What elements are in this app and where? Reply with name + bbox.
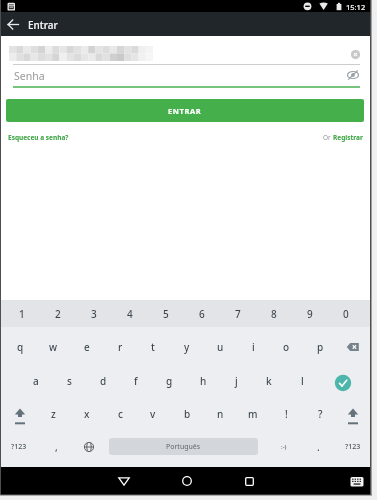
staticText: m <box>248 407 258 421</box>
button[interactable]: m <box>238 404 268 424</box>
button[interactable]: 8 <box>259 304 289 324</box>
button[interactable]: v <box>138 404 168 424</box>
staticText: ! <box>285 407 288 421</box>
button[interactable] <box>350 49 361 60</box>
button[interactable]: a <box>21 371 51 391</box>
button[interactable] <box>346 69 360 81</box>
button[interactable]: f <box>121 371 151 391</box>
button[interactable] <box>174 469 200 493</box>
staticText: 2 <box>55 307 61 321</box>
button[interactable]: y <box>172 337 202 357</box>
button[interactable]: t <box>138 337 168 357</box>
staticText: Entrar <box>28 18 58 32</box>
button[interactable]: 9 <box>295 304 325 324</box>
button[interactable]: k <box>254 371 284 391</box>
button[interactable]: j <box>221 371 251 391</box>
button[interactable]: Esqueceu a senha? <box>8 133 69 142</box>
button[interactable]: g <box>154 371 184 391</box>
staticText: j <box>235 374 238 388</box>
staticText: , <box>55 440 58 454</box>
button[interactable]: , <box>41 437 71 457</box>
button[interactable]: u <box>205 337 235 357</box>
button[interactable]: :-) <box>269 437 299 457</box>
staticText: 5 <box>163 307 169 321</box>
staticText: ?123 <box>345 442 361 452</box>
button[interactable]: . <box>303 437 333 457</box>
button[interactable]: o <box>271 337 301 357</box>
staticText: t <box>151 340 155 354</box>
button[interactable]: p <box>305 337 335 357</box>
staticText: 4 <box>127 307 133 321</box>
staticText: Registrar <box>333 133 363 142</box>
button[interactable]: ?123 <box>338 437 368 457</box>
staticText: a <box>33 374 39 388</box>
button[interactable]: 6 <box>187 304 217 324</box>
staticText: x <box>84 407 90 421</box>
button[interactable]: 7 <box>223 304 253 324</box>
button[interactable]: 4 <box>115 304 145 324</box>
staticText: k <box>266 374 272 388</box>
button[interactable]: n <box>205 404 235 424</box>
button[interactable]: Português <box>109 438 258 455</box>
button[interactable]: b <box>172 404 202 424</box>
staticText: Senha <box>14 69 45 83</box>
button[interactable]: 3 <box>79 304 109 324</box>
staticText: 7 <box>235 307 241 321</box>
button[interactable]: 1 <box>7 304 37 324</box>
staticText: Or <box>323 133 333 142</box>
staticText: 6 <box>199 307 205 321</box>
button[interactable]: l <box>287 371 317 391</box>
button[interactable]: z <box>38 404 68 424</box>
button[interactable]: ? <box>305 404 335 424</box>
button[interactable]: e <box>72 337 102 357</box>
button[interactable]: x <box>72 404 102 424</box>
staticText: 8 <box>271 307 277 321</box>
staticText: b <box>184 407 191 421</box>
staticText: 3 <box>91 307 97 321</box>
staticText: g <box>166 374 173 388</box>
staticText: q <box>17 340 24 354</box>
button[interactable]: c <box>105 404 135 424</box>
staticText: w <box>49 340 58 354</box>
staticText: Português <box>166 442 201 452</box>
staticText: h <box>200 374 207 388</box>
button[interactable]: 5 <box>151 304 181 324</box>
staticText: 0 <box>343 307 349 321</box>
button[interactable]: Or <box>323 133 363 142</box>
staticText: n <box>217 407 224 421</box>
button[interactable]: r <box>105 337 135 357</box>
staticText: ENTRAR <box>168 106 202 116</box>
staticText: f <box>134 374 138 388</box>
staticText: y <box>184 340 190 354</box>
button[interactable]: 0 <box>331 304 361 324</box>
staticText: u <box>217 340 224 354</box>
staticText: o <box>283 340 290 354</box>
staticText: i <box>252 340 255 354</box>
staticText: 9 <box>307 307 313 321</box>
button[interactable] <box>236 469 262 493</box>
button[interactable]: h <box>188 371 218 391</box>
button[interactable]: s <box>54 371 84 391</box>
staticText: . <box>317 440 320 454</box>
staticText: s <box>67 374 72 388</box>
staticText: v <box>150 407 156 421</box>
staticText: ? <box>318 407 323 421</box>
button[interactable] <box>111 469 137 493</box>
staticText: r <box>118 340 123 354</box>
staticText: p <box>317 340 324 354</box>
staticText: c <box>118 407 123 421</box>
button[interactable]: 2 <box>43 304 73 324</box>
button[interactable]: ENTRAR <box>6 99 364 122</box>
button[interactable]: ?123 <box>4 437 34 457</box>
button[interactable]: w <box>38 337 68 357</box>
button[interactable]: q <box>5 337 35 357</box>
button[interactable]: i <box>238 337 268 357</box>
button[interactable]: ! <box>271 404 301 424</box>
staticText: 15:12 <box>346 2 366 12</box>
staticText: e <box>84 340 90 354</box>
staticText: ?123 <box>11 442 27 452</box>
button[interactable]: d <box>88 371 118 391</box>
staticText: z <box>51 407 56 421</box>
button[interactable] <box>345 470 369 492</box>
button[interactable] <box>3 14 23 34</box>
